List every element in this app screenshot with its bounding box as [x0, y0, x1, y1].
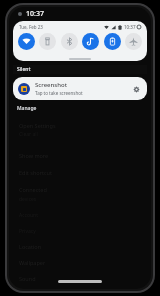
button[interactable]: Wi-Fi: [18, 33, 35, 50]
staticText: Tue, Feb 23: [19, 24, 43, 30]
staticText: Show more: [19, 152, 49, 159]
staticText: Silent: [17, 66, 31, 73]
button[interactable]: Manage: [17, 105, 37, 112]
button[interactable]: Sound: [19, 275, 43, 282]
staticText: Wallpaper: [19, 259, 46, 266]
staticText: Edit shortcut: [19, 169, 52, 176]
button[interactable]: Connected: [19, 186, 49, 193]
button[interactable]: Flashlight: [39, 33, 56, 50]
button[interactable]: Battery Saver: [104, 33, 121, 50]
staticText: Sound: [19, 275, 36, 282]
staticText: Connected: [19, 186, 47, 193]
button[interactable]: Do Not Disturb: [82, 33, 99, 50]
staticText: Screenshot: [35, 81, 67, 89]
button[interactable]: Airplane mode: [125, 33, 142, 50]
staticText: Tap to take screenshot: [35, 90, 83, 96]
staticText: Location: [19, 243, 42, 250]
button[interactable]: Wallpaper: [19, 259, 49, 266]
button[interactable]: Settings: [130, 83, 142, 95]
staticText: 10:37: [124, 24, 136, 30]
button[interactable]: Screenshot: [13, 77, 147, 100]
button[interactable]: Location: [19, 243, 47, 250]
button[interactable]: Bluetooth: [61, 33, 78, 50]
staticText: Open Settings: [19, 122, 56, 129]
button[interactable]: Open Settings: [19, 122, 57, 129]
button[interactable]: Edit shortcut: [19, 169, 53, 176]
staticText: 10:37: [26, 9, 44, 19]
button[interactable]: Show more: [19, 152, 49, 159]
